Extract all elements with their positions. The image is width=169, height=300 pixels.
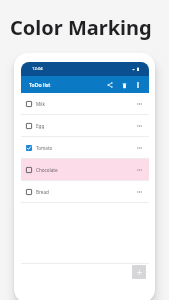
button[interactable]: Bread <box>21 181 149 202</box>
staticText: Chocolate <box>36 167 58 173</box>
staticText: 12:04 <box>32 66 43 72</box>
button[interactable]: Share <box>103 78 117 92</box>
button[interactable]: Chocolate <box>21 159 149 180</box>
staticText: Tomato <box>36 145 53 151</box>
button[interactable]: Tomato <box>21 137 149 158</box>
button[interactable]: Milk <box>21 93 149 114</box>
button[interactable]: Add <box>132 265 146 279</box>
button[interactable]: Egg <box>21 115 149 136</box>
button[interactable]: More options <box>131 78 145 92</box>
staticText: Color Marking <box>10 14 152 41</box>
staticText: Egg <box>36 123 45 129</box>
staticText: Milk <box>36 101 45 107</box>
staticText: ToDo list <box>29 81 51 88</box>
button[interactable]: Delete <box>117 78 131 92</box>
staticText: Bread <box>36 189 49 195</box>
